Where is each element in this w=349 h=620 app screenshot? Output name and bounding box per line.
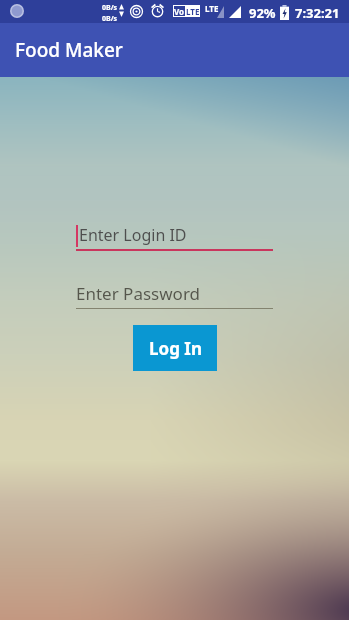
staticText: Log In: [149, 337, 202, 360]
button[interactable]: Enter Login ID: [76, 226, 273, 253]
staticText: Enter Password: [76, 282, 201, 305]
button[interactable]: Log In: [133, 325, 217, 371]
staticText: LTE: [186, 6, 200, 17]
staticText: LTE: [205, 3, 219, 14]
button[interactable]: Enter Password: [76, 284, 273, 311]
staticText: 92%: [249, 4, 276, 22]
staticText: 0B/s: [102, 3, 118, 13]
staticText: Food Maker: [15, 37, 123, 63]
staticText: 0B/s: [102, 14, 118, 24]
staticText: 7:32:21: [295, 4, 340, 22]
staticText: Enter Login ID: [79, 224, 187, 246]
staticText: Vo: [174, 6, 185, 16]
